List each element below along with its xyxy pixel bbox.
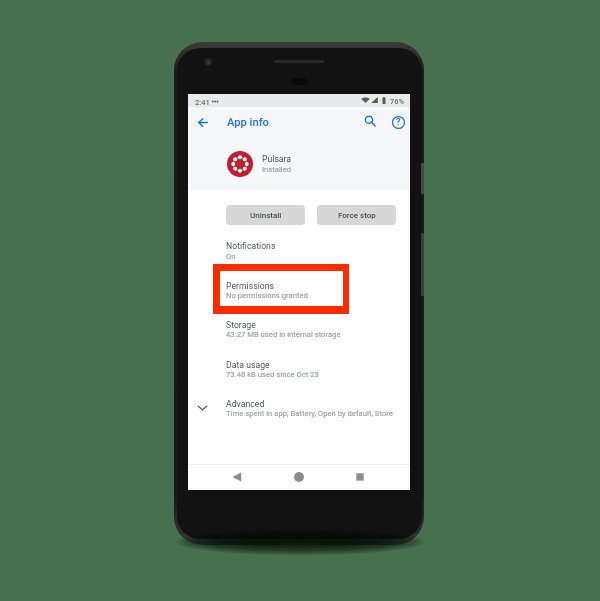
button[interactable]: Help [387,111,409,133]
staticText: Installed [262,165,292,174]
button[interactable] [188,229,410,268]
staticText: Notifications [226,241,276,251]
staticText: 76% [390,97,405,106]
button[interactable]: Back [192,111,214,133]
staticText: ? [396,117,401,128]
button[interactable]: Recents [349,466,371,488]
button[interactable]: Force stop [317,205,396,225]
staticText: Time spent in app, Battery, Open by defa… [226,409,393,418]
button[interactable]: Back [226,466,248,488]
staticText: 73.48 kB used since Oct 23 [226,370,319,379]
button[interactable] [188,308,410,347]
staticText: Data usage [226,360,270,370]
staticText: 2:41 [195,98,210,107]
button[interactable] [188,348,410,387]
staticText: Uninstall [250,211,282,220]
staticText: No permissions granted [226,291,308,300]
staticText: Pulsara [262,154,292,164]
button[interactable] [188,269,410,308]
staticText: Force stop [338,211,376,220]
staticText: On [226,252,236,261]
staticText: Storage [226,320,256,330]
button[interactable]: Home [288,466,310,488]
staticText: Permissions [226,281,275,291]
staticText: 43.27 MB used in internal storage [226,330,341,339]
button[interactable]: Uninstall [226,205,305,225]
button[interactable]: Search [359,110,381,132]
staticText: Advanced [226,399,265,409]
staticText: App info [227,116,269,129]
button[interactable] [188,387,410,426]
